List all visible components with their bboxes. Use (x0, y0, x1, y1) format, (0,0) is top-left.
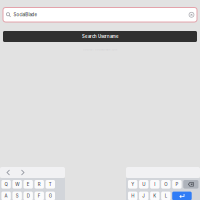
button[interactable]: Search Username (3, 31, 197, 42)
staticText: R (38, 182, 41, 187)
button[interactable]: J (139, 192, 148, 200)
button[interactable]: D (23, 192, 33, 200)
button[interactable]: SocialBlade (3, 7, 197, 22)
button[interactable]: I (150, 180, 159, 189)
staticText: A (5, 193, 8, 198)
button[interactable]: U (139, 180, 148, 189)
button[interactable]: L (161, 192, 171, 200)
staticText: I (154, 182, 155, 187)
button[interactable]: Y (128, 180, 137, 189)
staticText: G (49, 193, 52, 198)
staticText: Q (5, 182, 8, 187)
button[interactable]: G (46, 192, 55, 200)
staticText: Search Username (82, 34, 118, 39)
button[interactable]: A (1, 192, 11, 200)
button[interactable]: E (23, 180, 33, 189)
button[interactable]: F (35, 192, 44, 200)
staticText: T (49, 182, 52, 187)
button[interactable]: Previous field (6, 170, 11, 175)
staticText: F (38, 193, 41, 198)
staticText: D (27, 193, 30, 198)
staticText: O (164, 182, 167, 187)
staticText: E (27, 182, 30, 187)
button[interactable]: Return (172, 192, 192, 200)
button[interactable]: P (172, 180, 182, 189)
button[interactable]: R (35, 180, 44, 189)
staticText: L (165, 193, 167, 198)
staticText: K (153, 193, 156, 198)
staticText: Y (131, 182, 134, 187)
staticText: S (16, 193, 19, 198)
staticText: W (15, 182, 19, 187)
staticText: H (131, 193, 134, 198)
button[interactable]: W (12, 180, 22, 189)
staticText: SocialBlade (13, 12, 36, 17)
button[interactable]: Q (1, 180, 11, 189)
button[interactable]: Delete (183, 180, 198, 189)
staticText: U (142, 182, 145, 187)
button[interactable]: T (46, 180, 55, 189)
button[interactable]: H (128, 192, 137, 200)
button[interactable]: K (150, 192, 159, 200)
button[interactable]: O (161, 180, 171, 189)
staticText: J (142, 193, 145, 198)
button[interactable]: S (12, 192, 22, 200)
button[interactable]: Next field (20, 170, 25, 175)
staticText: P (175, 182, 178, 187)
